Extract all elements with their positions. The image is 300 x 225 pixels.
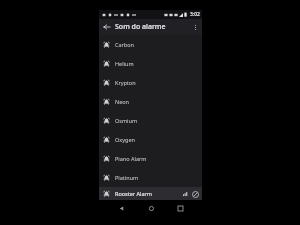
button[interactable]: Neon: [99, 92, 202, 111]
staticText: Osmium: [115, 117, 138, 124]
button[interactable]: Piano Alarm: [99, 149, 202, 168]
button[interactable]: Rooster Alarm: [99, 187, 202, 200]
button[interactable]: Stop preview: [191, 190, 199, 198]
staticText: Rooster Alarm: [115, 190, 152, 197]
button[interactable]: Back: [99, 19, 115, 35]
button[interactable]: Recent apps: [172, 200, 188, 216]
staticText: Oxygen: [115, 136, 135, 143]
button[interactable]: Oxygen: [99, 130, 202, 149]
staticText: Som do alarme: [115, 22, 166, 32]
button[interactable]: Back: [113, 200, 129, 216]
button[interactable]: Helium: [99, 54, 202, 73]
button[interactable]: Krypton: [99, 73, 202, 92]
staticText: Platinum: [115, 174, 139, 181]
staticText: Piano Alarm: [115, 155, 147, 162]
button[interactable]: Osmium: [99, 111, 202, 130]
button[interactable]: Platinum: [99, 168, 202, 187]
staticText: Krypton: [115, 79, 136, 86]
button[interactable]: More options: [188, 20, 202, 34]
staticText: Carbon: [115, 41, 134, 48]
staticText: 3:02: [190, 11, 200, 18]
button[interactable]: Home: [143, 200, 159, 216]
button[interactable]: Carbon: [99, 35, 202, 54]
staticText: Helium: [115, 60, 134, 67]
staticText: Neon: [115, 98, 130, 105]
